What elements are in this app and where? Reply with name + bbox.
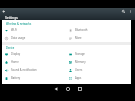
button[interactable]: Sound & notification xyxy=(2,66,66,74)
staticText: Display xyxy=(11,52,21,56)
button[interactable]: Users xyxy=(66,66,131,74)
button[interactable]: Wi-Fi xyxy=(2,26,66,34)
staticText: Bluetooth xyxy=(75,28,88,32)
button[interactable]: Navigate up xyxy=(0,8,7,15)
staticText: Storage xyxy=(75,52,85,56)
staticText: Wi-Fi xyxy=(11,28,18,32)
button[interactable]: Back xyxy=(50,84,62,93)
button[interactable]: Battery xyxy=(2,74,66,82)
button[interactable]: Bluetooth xyxy=(66,26,131,34)
button[interactable]: Recent apps xyxy=(74,84,86,93)
button[interactable]: Memory xyxy=(66,58,131,66)
button[interactable]: Apps xyxy=(66,74,131,82)
staticText: Battery xyxy=(11,76,21,80)
staticText: Data usage xyxy=(11,36,26,40)
staticText: More xyxy=(75,36,82,40)
staticText: Settings xyxy=(5,15,18,19)
button[interactable]: More options xyxy=(127,8,134,15)
button[interactable]: Home xyxy=(62,84,74,93)
staticText: Memory xyxy=(75,60,86,64)
button[interactable]: Display xyxy=(2,50,66,58)
staticText: Home xyxy=(11,60,19,64)
staticText: Users xyxy=(75,68,83,72)
staticText: Sound & notification xyxy=(11,68,37,72)
button[interactable]: Data usage xyxy=(2,34,66,42)
staticText: Wireless & networks xyxy=(6,22,32,26)
staticText: Apps xyxy=(75,76,82,80)
button[interactable]: More xyxy=(66,34,131,42)
button[interactable]: Home xyxy=(2,58,66,66)
button[interactable]: Search xyxy=(119,8,127,15)
staticText: Device xyxy=(6,46,15,50)
button[interactable]: Storage xyxy=(66,50,131,58)
